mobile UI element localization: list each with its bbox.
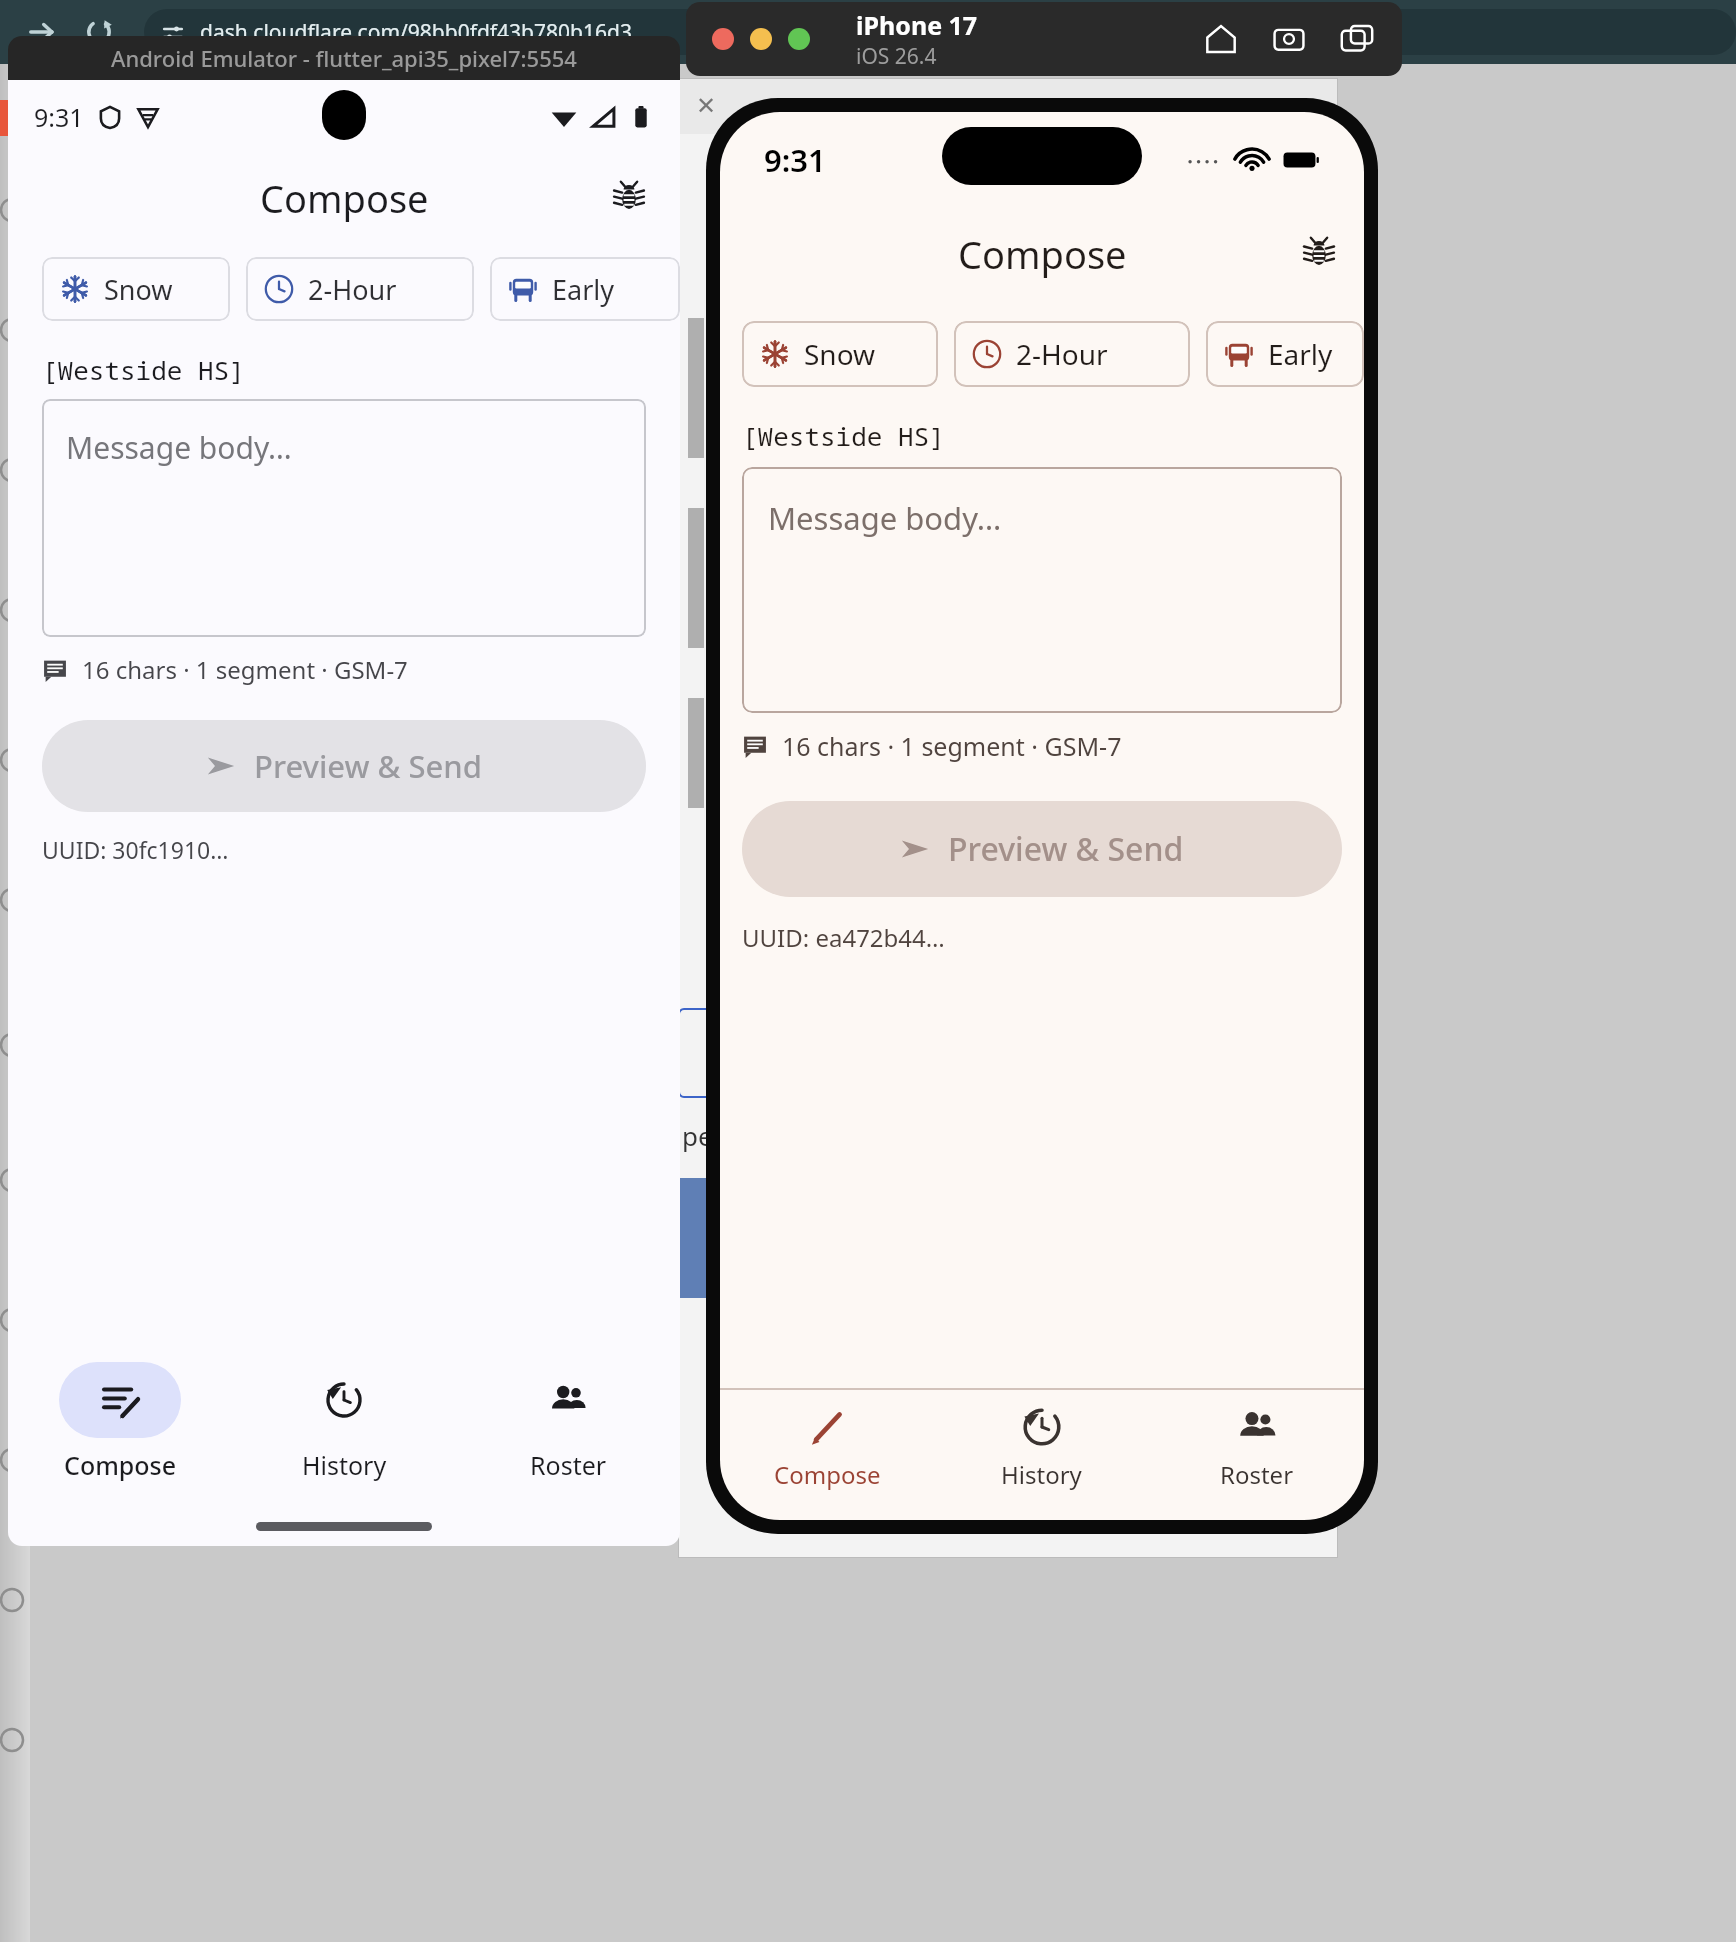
- button[interactable]: Roster: [1149, 1390, 1364, 1506]
- staticText: [Westside HS]: [42, 352, 245, 387]
- button[interactable]: Snow Day: [42, 257, 230, 321]
- button[interactable]: Message body…: [742, 467, 1342, 713]
- button[interactable]: History: [232, 1336, 456, 1506]
- staticText: –: [751, 90, 763, 123]
- staticText: Snow Day: [804, 335, 920, 373]
- staticText: Roster: [1220, 1458, 1294, 1491]
- staticText: 16 chars · 1 segment · GSM-7: [82, 653, 408, 686]
- staticText: Message body…: [768, 497, 1002, 539]
- button[interactable]: Message body…: [42, 399, 646, 637]
- button[interactable]: 2-Hour Delay: [246, 257, 474, 321]
- button[interactable]: Roster: [456, 1336, 680, 1506]
- staticText: 16 chars · 1 segment · GSM-7: [782, 729, 1122, 763]
- staticText: Early Dismis: [552, 271, 662, 308]
- staticText: Compose: [64, 1448, 177, 1482]
- staticText: 9:31: [764, 139, 826, 181]
- staticText: dash.cloudflare.com/98bb0fdf43b780b16d3: [200, 18, 632, 47]
- button[interactable]: Early Dismis: [490, 257, 680, 321]
- staticText: History: [302, 1448, 387, 1482]
- staticText: iOS 26.4: [856, 42, 937, 71]
- staticText: Roster: [530, 1448, 607, 1482]
- button[interactable]: Snow Day: [742, 321, 938, 387]
- button[interactable]: Early Di: [1206, 321, 1364, 387]
- staticText: Preview & Send: [948, 827, 1184, 871]
- staticText: History: [1001, 1458, 1082, 1491]
- staticText: Compose: [774, 1458, 881, 1491]
- button[interactable]: Compose: [720, 1390, 934, 1506]
- button[interactable]: Compose: [8, 1336, 232, 1506]
- button[interactable]: Preview & Send: [42, 720, 646, 812]
- staticText: 2-Hour Delay: [1016, 335, 1172, 373]
- staticText: UUID: ea472b44…: [742, 921, 945, 954]
- staticText: Message body…: [66, 427, 292, 468]
- staticText: 2-Hour Delay: [308, 271, 456, 308]
- staticText: Compose: [958, 228, 1127, 280]
- staticText: 9:31: [34, 100, 84, 134]
- button[interactable]: Debug: [598, 167, 660, 229]
- staticText: ✕: [696, 92, 717, 120]
- button[interactable]: 2-Hour Delay: [954, 321, 1190, 387]
- button[interactable]: History: [934, 1390, 1149, 1506]
- staticText: Snow Day: [104, 271, 212, 308]
- button[interactable]: Debug: [1288, 223, 1350, 285]
- staticText: Preview & Send: [254, 745, 482, 787]
- staticText: Early Di: [1268, 335, 1346, 373]
- staticText: UUID: 30fc1910…: [42, 834, 229, 865]
- staticText: [Westside HS]: [742, 418, 945, 453]
- staticText: Compose: [260, 172, 429, 224]
- staticText: Android Emulator - flutter_api35_pixel7:…: [111, 43, 577, 73]
- staticText: iPhone 17: [856, 8, 978, 42]
- button[interactable]: Preview & Send: [742, 801, 1342, 897]
- staticText: pe: [682, 1118, 713, 1153]
